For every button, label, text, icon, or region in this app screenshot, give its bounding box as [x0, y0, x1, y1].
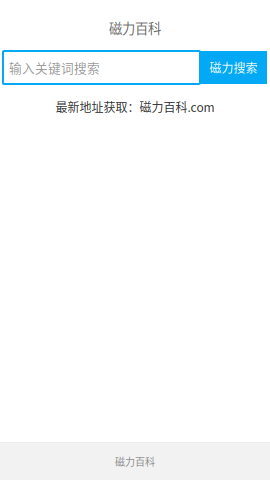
button[interactable]: 磁力搜索	[200, 51, 267, 84]
staticText: 最新地址获取：磁力百科.com	[55, 98, 214, 115]
staticText: 磁力百科	[115, 454, 155, 469]
staticText: 磁力百科	[109, 18, 161, 37]
staticText: 输入关键词搜索	[9, 58, 100, 77]
staticText: 磁力搜索	[209, 59, 257, 76]
button[interactable]: 输入关键词搜索	[3, 51, 200, 84]
